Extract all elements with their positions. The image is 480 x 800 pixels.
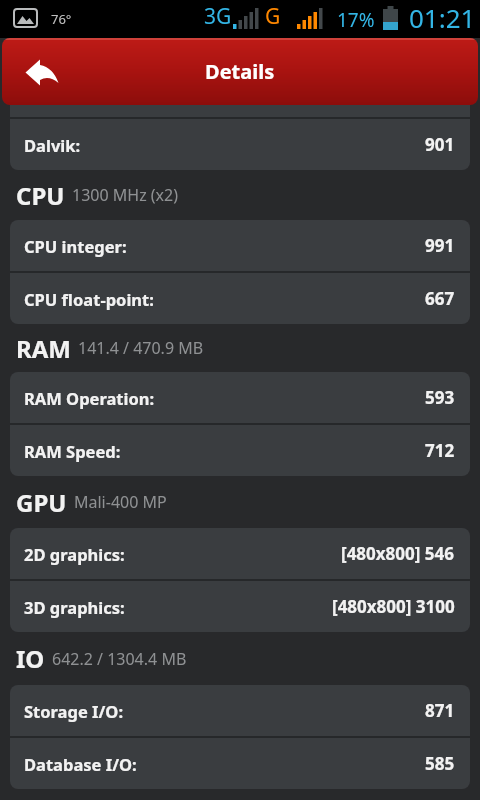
staticText: 667 [425, 287, 455, 310]
staticText: CPU integer: [24, 235, 127, 257]
staticText: 3D graphics: [24, 596, 125, 618]
staticText: Dalvik: [24, 134, 81, 156]
button[interactable]: RAM Operation: [10, 372, 470, 423]
staticText: 76° [51, 10, 72, 28]
button[interactable]: Database I/O: [10, 738, 470, 789]
staticText: RAM Speed: [24, 440, 121, 462]
staticText: CPU float-point: [24, 288, 154, 310]
staticText: 991 [425, 234, 455, 257]
staticText: CPU [16, 179, 65, 212]
button[interactable]: Storage I/O: [10, 685, 470, 736]
staticText: [480x800] 546 [341, 542, 455, 565]
staticText: Mali-400 MP [74, 491, 167, 513]
button[interactable]: Dalvik: [10, 119, 470, 170]
staticText: 3G [204, 2, 232, 31]
staticText: GPU [16, 486, 67, 519]
button[interactable]: 2D graphics: [10, 528, 470, 579]
button[interactable]: RAM Speed: [10, 425, 470, 476]
staticText: RAM Operation: [24, 387, 155, 409]
staticText: 17% [337, 7, 375, 33]
staticText: 1300 MHz (x2) [72, 184, 179, 206]
button[interactable] [2, 38, 62, 105]
staticText: [480x800] 3100 [332, 595, 455, 618]
staticText: G [265, 2, 281, 31]
staticText: 712 [425, 439, 455, 462]
staticText: 642.2 / 1304.4 MB [52, 648, 187, 670]
staticText: Database I/O: [24, 753, 137, 775]
button[interactable]: 3D graphics: [10, 581, 470, 632]
staticText: RAM [16, 332, 71, 365]
staticText: Storage I/O: [24, 700, 124, 722]
staticText: 2D graphics: [24, 543, 125, 565]
staticText: 871 [425, 699, 455, 722]
button[interactable]: CPU integer: [10, 220, 470, 271]
staticText: 593 [425, 386, 455, 409]
staticText: Details [205, 58, 275, 85]
staticText: 01:21 [409, 0, 476, 35]
button[interactable]: CPU float-point: [10, 273, 470, 324]
staticText: 585 [425, 752, 455, 775]
staticText: 901 [425, 133, 455, 156]
staticText: 141.4 / 470.9 MB [78, 337, 204, 359]
staticText: IO [16, 642, 45, 675]
